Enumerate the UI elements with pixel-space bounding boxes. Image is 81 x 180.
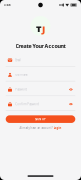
staticText: Password — [15, 88, 27, 91]
button[interactable]: Email — [6, 54, 75, 66]
staticText: Confirm Password — [15, 102, 39, 106]
staticText: Username — [15, 73, 28, 77]
button[interactable]: Password — [6, 83, 75, 95]
staticText: Login — [54, 126, 62, 130]
staticText: Already have an account? — [19, 126, 52, 130]
button[interactable]: Username — [6, 69, 75, 81]
staticText: SIGN UP — [35, 117, 46, 121]
staticText: J — [42, 23, 45, 35]
button[interactable]: Confirm Password — [6, 98, 75, 110]
staticText: Email — [15, 58, 21, 62]
staticText: T — [36, 23, 42, 35]
staticText: 3:48 — [4, 3, 11, 7]
staticText: Create Your Account — [15, 42, 65, 50]
button[interactable]: SIGN UP — [6, 115, 75, 123]
button[interactable]: Already have an account? — [19, 126, 62, 130]
